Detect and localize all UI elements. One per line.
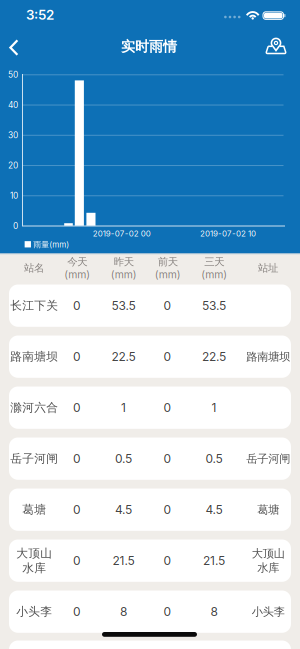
staticText: 40 [8, 100, 18, 110]
button[interactable]: 岳子河闸 [9, 437, 291, 480]
staticText: 三天 (mm) [201, 255, 227, 281]
staticText: 22.5 [111, 349, 135, 364]
staticText: 0 [73, 502, 81, 517]
staticText: 2019-07-02 00 [93, 229, 151, 238]
staticText: 0 [73, 604, 81, 619]
staticText: 岳子河闸 [246, 452, 290, 466]
button[interactable]: 滁河六合 [9, 386, 291, 429]
button[interactable]: 小头李 [9, 590, 291, 633]
staticText: 50 [8, 70, 18, 80]
staticText: 20 [8, 160, 18, 171]
staticText: 前天 (mm) [154, 255, 180, 281]
staticText: 0 [163, 349, 171, 364]
staticText: 大顶山 水库 [251, 546, 284, 575]
staticText: 站名 [24, 261, 44, 274]
staticText: 0 [163, 451, 171, 466]
button[interactable]: 长江下关 [9, 284, 291, 327]
staticText: 滁河六合 [10, 400, 58, 415]
staticText: 1 [211, 400, 216, 415]
staticText: 8 [120, 604, 127, 619]
staticText: 0 [163, 604, 171, 619]
staticText: 4.5 [205, 502, 222, 517]
button[interactable]: Back [2, 36, 26, 60]
staticText: 0.5 [205, 451, 222, 466]
staticText: 0 [73, 400, 81, 415]
staticText: 0 [163, 502, 171, 517]
staticText: 昨天 (mm) [110, 255, 136, 281]
staticText: 站址 [258, 261, 278, 274]
staticText: 30 [8, 130, 18, 140]
staticText: 53.5 [111, 298, 135, 313]
staticText: 路南塘坝 [246, 350, 290, 364]
button[interactable]: 大顶山 水库 [9, 539, 291, 582]
staticText: 今天 (mm) [64, 255, 90, 281]
staticText: 小头李 [16, 604, 52, 619]
staticText: 0 [73, 451, 81, 466]
staticText: 21.5 [203, 553, 225, 568]
staticText: 葛塘 [257, 503, 279, 517]
staticText: 雨量(mm) [33, 239, 69, 250]
staticText: 2019-07-02 10 [200, 229, 256, 238]
button[interactable]: 葛塘 [9, 488, 291, 531]
staticText: 大顶山 水库 [16, 546, 52, 575]
staticText: 0 [163, 298, 171, 313]
staticText: 0 [163, 400, 171, 415]
button[interactable]: 路南塘坝 [9, 335, 291, 378]
staticText: 0.5 [115, 451, 132, 466]
staticText: 长江下关 [10, 298, 58, 313]
staticText: 岳子河闸 [10, 451, 58, 466]
staticText: 葛塘 [22, 502, 46, 517]
staticText: 0 [73, 349, 81, 364]
staticText: 0 [13, 221, 18, 231]
staticText: 21.5 [112, 553, 134, 568]
staticText: 0 [73, 298, 81, 313]
staticText: 8 [210, 604, 217, 619]
staticText: 3:52 [26, 7, 54, 23]
staticText: 0 [73, 553, 81, 568]
staticText: 10 [10, 191, 18, 201]
staticText: 小头李 [251, 605, 284, 619]
staticText: 53.5 [202, 298, 226, 313]
button[interactable]: Map [261, 31, 291, 59]
staticText: 4.5 [115, 502, 132, 517]
staticText: 0 [163, 553, 171, 568]
staticText: 实时雨情 [121, 38, 177, 55]
staticText: 1 [121, 400, 126, 415]
staticText: 路南塘坝 [10, 349, 58, 364]
staticText: 22.5 [202, 349, 226, 364]
